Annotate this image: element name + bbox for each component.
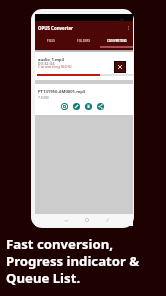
staticText: Converting (66%) [38, 64, 72, 70]
button[interactable]: Cancel [114, 61, 126, 73]
button[interactable]: Play [61, 103, 68, 110]
staticText: Fast conversion, Progress indicator & Qu… [6, 235, 140, 287]
staticText: CONVERTING [107, 39, 127, 43]
staticText: audio_1.mp3 [38, 57, 65, 63]
button[interactable]: Delete [85, 103, 92, 110]
button[interactable]: Share [97, 103, 104, 110]
button[interactable]: FOLDERS [67, 35, 100, 50]
button[interactable]: CONVERTING [100, 35, 133, 50]
button[interactable]: More options [125, 21, 133, 35]
button[interactable]: FILES [35, 35, 67, 50]
staticText: FOLDERS [77, 39, 91, 43]
staticText: OPUS Converter [38, 25, 74, 31]
staticText: FILES [47, 39, 55, 43]
button[interactable]: Edit [73, 103, 80, 110]
staticText: 7.8 MB [38, 95, 49, 99]
staticText: PT131950-#M0001.mp3 [38, 89, 86, 95]
staticText: 00:32:34 [38, 61, 55, 67]
